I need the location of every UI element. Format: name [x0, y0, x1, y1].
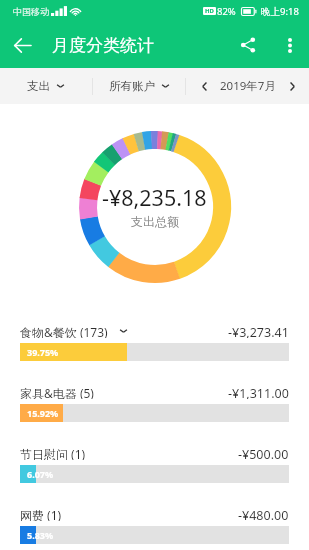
staticText: 中国移动: [13, 6, 49, 17]
staticText: -¥1,311.00: [228, 385, 289, 399]
button[interactable]: More options: [270, 22, 309, 68]
staticText: -¥8,235.18: [102, 183, 207, 212]
button[interactable]: 所有账户: [93, 68, 185, 104]
staticText: 2019年7月: [220, 78, 276, 94]
button[interactable]: 节日慰问 (1): [0, 440, 309, 501]
button[interactable]: 支出: [0, 68, 92, 104]
staticText: 节日慰问 (1): [20, 446, 86, 460]
staticText: 晚上9:18: [261, 5, 299, 18]
staticText: 网费 (1): [20, 507, 62, 521]
button[interactable]: 网费 (1): [0, 501, 309, 550]
button[interactable]: 食物&餐饮 (173): [0, 318, 309, 379]
button[interactable]: 家具&电器 (5): [0, 379, 309, 440]
staticText: 82%: [217, 5, 236, 18]
staticText: 支出: [27, 79, 50, 93]
staticText: -¥3,273.41: [228, 324, 289, 338]
button[interactable]: Back: [0, 22, 44, 68]
staticText: 39.75%: [27, 346, 59, 358]
staticText: HD: [205, 7, 214, 15]
button[interactable]: Next month: [276, 68, 308, 104]
staticText: 15.92%: [27, 407, 59, 419]
staticText: -¥500.00: [238, 446, 289, 460]
staticText: 所有账户: [109, 79, 155, 93]
button[interactable]: Share: [226, 22, 270, 68]
staticText: 6.07%: [27, 468, 54, 480]
staticText: -¥480.00: [238, 507, 289, 521]
staticText: 5.83%: [27, 529, 54, 541]
staticText: 支出总额: [131, 214, 179, 229]
staticText: 食物&餐饮 (173): [20, 324, 108, 338]
staticText: 月度分类统计: [52, 35, 154, 56]
button[interactable]: Previous month: [188, 68, 220, 104]
staticText: 家具&电器 (5): [20, 385, 94, 399]
